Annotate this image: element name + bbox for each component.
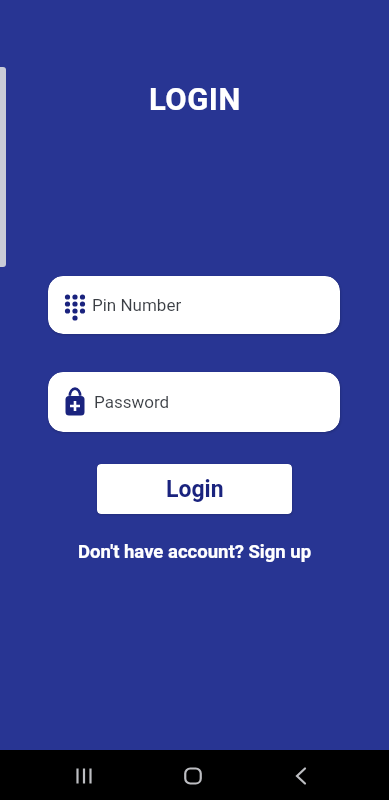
button[interactable] — [173, 756, 213, 796]
staticText: Pin Number — [92, 295, 182, 315]
button[interactable]: Pin Number — [48, 276, 340, 334]
staticText: LOGIN — [149, 81, 241, 117]
button[interactable]: Password — [48, 372, 340, 432]
button[interactable]: Login — [97, 464, 292, 514]
button[interactable]: Don't have account? Sign up — [0, 541, 389, 563]
staticText: Password — [94, 392, 170, 412]
staticText: Don't have account? Sign up — [78, 541, 312, 563]
button[interactable] — [281, 756, 321, 796]
staticText: Login — [166, 476, 224, 503]
button[interactable] — [64, 756, 104, 796]
